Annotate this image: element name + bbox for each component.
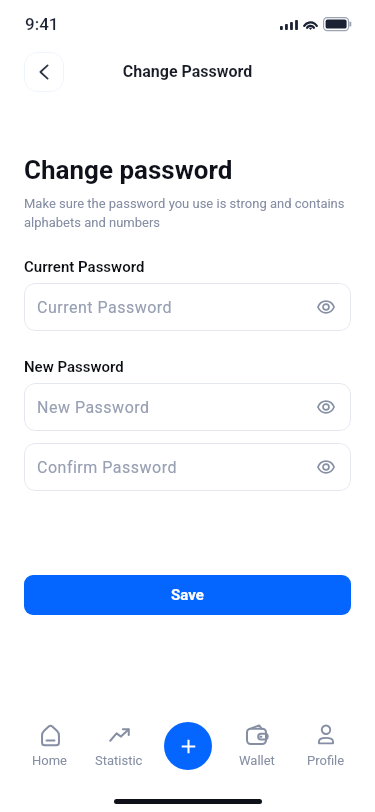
staticText: 9:41 [25,14,59,34]
button[interactable]: Statistic [84,723,153,768]
staticText: Home [32,753,67,768]
staticText: Profile [307,753,345,768]
button[interactable]: Current Password [24,283,351,331]
staticText: Current Password [24,258,145,276]
staticText: Confirm Password [37,458,177,477]
staticText: Statistic [95,753,143,768]
button[interactable]: Profile [291,723,360,768]
button[interactable]: Home [15,723,84,768]
staticText: Current Password [37,298,173,317]
button[interactable]: Save [24,575,351,615]
button[interactable]: Show New Password [315,396,337,418]
button[interactable]: Confirm Password [24,443,351,491]
button[interactable]: Add [164,722,212,770]
staticText: New Password [37,398,150,417]
button[interactable]: New Password [24,383,351,431]
button[interactable]: Show Current Password [315,296,337,318]
button[interactable]: Wallet [222,723,291,768]
staticText: Wallet [239,753,275,768]
staticText: New Password [24,358,124,376]
button[interactable]: Back [24,52,64,92]
button[interactable]: Show Confirm Password [315,456,337,478]
staticText: Change password [24,155,233,185]
staticText: Make sure the password you use is strong… [24,196,351,230]
staticText: Save [171,586,204,604]
staticText: Change Password [0,62,375,81]
